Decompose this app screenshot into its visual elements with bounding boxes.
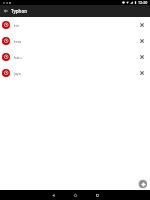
- staticText: kota: [14, 39, 22, 44]
- button[interactable]: Back: [0, 5, 11, 17]
- button[interactable]: jaya: [0, 65, 150, 81]
- button[interactable]: Remove: [136, 67, 148, 79]
- staticText: batu: [14, 55, 22, 60]
- staticText: 12:30: [138, 0, 148, 5]
- button[interactable]: Remove: [136, 19, 148, 31]
- button[interactable]: Add: [139, 180, 147, 188]
- button[interactable]: kiri: [0, 17, 150, 33]
- button[interactable]: Home: [64, 190, 86, 200]
- button[interactable]: Recents: [86, 190, 108, 200]
- staticText: jaya: [14, 71, 21, 76]
- button[interactable]: Remove: [136, 51, 148, 63]
- staticText: Typhon: [11, 8, 27, 14]
- button[interactable]: Back: [42, 190, 64, 200]
- button[interactable]: kota: [0, 33, 150, 49]
- button[interactable]: Remove: [136, 35, 148, 47]
- staticText: kiri: [14, 23, 20, 28]
- button[interactable]: batu: [0, 49, 150, 65]
